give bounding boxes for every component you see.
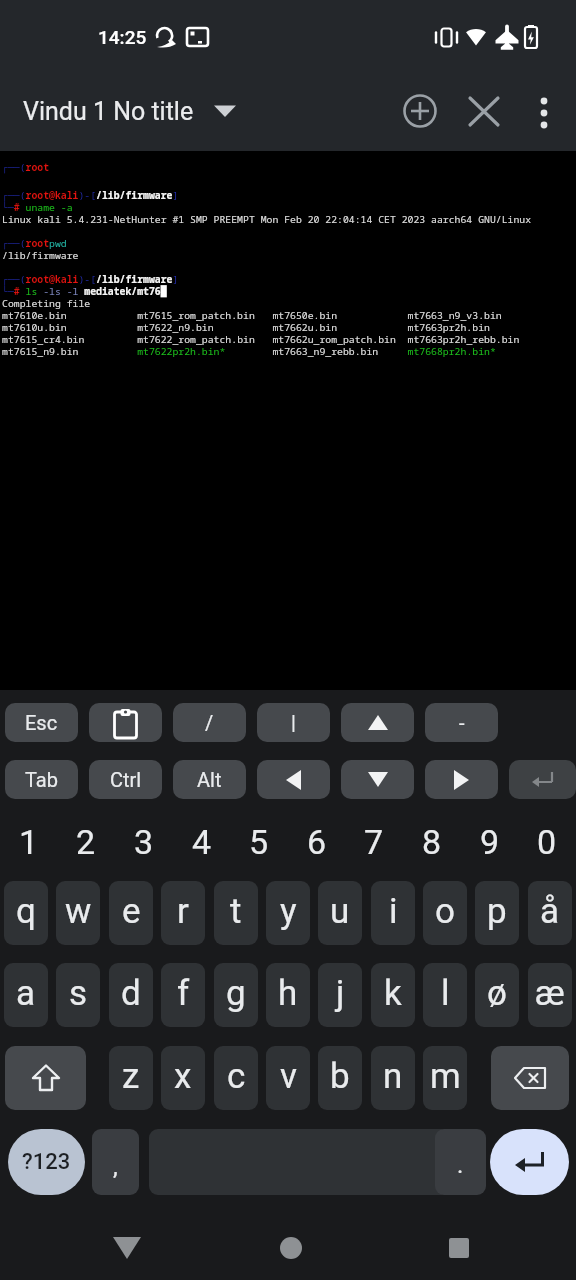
button[interactable]: w <box>56 881 100 945</box>
staticText: ┌──(root@kali)-[/lib/firmware] └─# uname… <box>2 153 532 358</box>
staticText: c <box>227 1056 246 1097</box>
staticText: ø <box>487 973 507 1014</box>
staticText: d <box>121 973 141 1014</box>
button[interactable]: d <box>109 963 153 1027</box>
staticText: x <box>174 1056 192 1097</box>
button[interactable] <box>89 703 162 742</box>
button[interactable]: n <box>371 1046 415 1110</box>
button[interactable]: 2 <box>58 820 114 864</box>
button[interactable]: y <box>266 881 310 945</box>
staticText: Vindu 1 No title <box>23 97 194 126</box>
button[interactable]: / <box>173 703 246 742</box>
button[interactable]: s <box>56 963 100 1027</box>
button[interactable]: 4 <box>174 820 230 864</box>
button[interactable]: i <box>371 881 415 945</box>
button[interactable]: 3 <box>116 820 172 864</box>
button[interactable] <box>509 760 576 799</box>
button[interactable] <box>341 703 414 742</box>
button[interactable]: e <box>109 881 153 945</box>
button[interactable]: t <box>214 881 258 945</box>
staticText: ?123 <box>22 1149 71 1175</box>
staticText: n <box>383 1056 403 1097</box>
button[interactable]: 6 <box>289 820 345 864</box>
staticText: z <box>122 1056 140 1097</box>
button[interactable] <box>522 89 566 133</box>
button[interactable]: j <box>318 963 362 1027</box>
button[interactable]: 9 <box>462 820 518 864</box>
button[interactable]: g <box>214 963 258 1027</box>
button[interactable]: ┌──(root <box>0 151 576 690</box>
button[interactable]: Ctrl <box>89 760 162 799</box>
staticText: Alt <box>197 768 222 791</box>
staticText: w <box>65 891 92 932</box>
staticText: t <box>230 891 242 932</box>
staticText: 4 <box>192 822 212 862</box>
button[interactable]: 1 <box>1 820 57 864</box>
button[interactable]: b <box>318 1046 362 1110</box>
staticText: ┌──(root <box>2 161 50 174</box>
button[interactable]: Vindu 1 No title <box>0 86 280 136</box>
button[interactable]: | <box>257 703 330 742</box>
button[interactable]: 0 <box>519 820 575 864</box>
button[interactable] <box>5 1046 86 1110</box>
button[interactable]: 7 <box>346 820 402 864</box>
button[interactable] <box>427 1216 491 1280</box>
staticText: 0 <box>537 822 557 862</box>
staticText: Ctrl <box>110 768 142 791</box>
button[interactable] <box>490 1129 569 1195</box>
button[interactable] <box>259 1216 323 1280</box>
staticText: p <box>487 891 507 932</box>
button[interactable]: v <box>266 1046 310 1110</box>
button[interactable]: ø <box>475 963 519 1027</box>
button[interactable] <box>95 1216 159 1280</box>
staticText: æ <box>535 973 565 1014</box>
button[interactable]: p <box>475 881 519 945</box>
staticText: . <box>457 1151 464 1179</box>
button[interactable]: q <box>4 881 48 945</box>
button[interactable]: x <box>161 1046 205 1110</box>
button[interactable]: f <box>161 963 205 1027</box>
staticText: e <box>122 891 141 932</box>
button[interactable] <box>341 760 414 799</box>
button[interactable] <box>398 89 442 133</box>
button[interactable]: o <box>423 881 467 945</box>
button[interactable]: c <box>214 1046 258 1110</box>
staticText: Esc <box>25 711 58 734</box>
staticText: v <box>280 1056 297 1097</box>
staticText: a <box>16 973 36 1014</box>
staticText: 7 <box>364 822 384 862</box>
button[interactable]: Tab <box>5 760 78 799</box>
staticText: 1 <box>19 822 39 862</box>
staticText: 14:25 <box>98 26 147 48</box>
button[interactable]: ?123 <box>8 1129 85 1195</box>
button[interactable]: , <box>92 1129 139 1195</box>
staticText: 2 <box>76 822 96 862</box>
button[interactable]: Esc <box>5 703 78 742</box>
button[interactable]: Alt <box>173 760 246 799</box>
button[interactable]: u <box>318 881 362 945</box>
staticText: j <box>336 973 345 1014</box>
button[interactable]: m <box>423 1046 467 1110</box>
button[interactable]: - <box>425 703 498 742</box>
button[interactable]: å <box>528 881 572 945</box>
button[interactable]: 8 <box>404 820 460 864</box>
button[interactable]: z <box>109 1046 153 1110</box>
button[interactable] <box>425 760 498 799</box>
staticText: i <box>389 891 398 932</box>
button[interactable] <box>257 760 330 799</box>
button[interactable]: 5 <box>231 820 287 864</box>
button[interactable]: h <box>266 963 310 1027</box>
button[interactable]: l <box>423 963 467 1027</box>
staticText: h <box>278 973 298 1014</box>
staticText: / <box>205 711 214 734</box>
button[interactable]: k <box>371 963 415 1027</box>
staticText: 9 <box>480 822 500 862</box>
button[interactable]: r <box>161 881 205 945</box>
staticText: Tab <box>25 768 58 791</box>
button[interactable]: æ <box>528 963 572 1027</box>
button[interactable]: . <box>435 1129 486 1195</box>
button[interactable]: a <box>4 963 48 1027</box>
button[interactable] <box>462 89 506 133</box>
button[interactable] <box>491 1046 569 1110</box>
